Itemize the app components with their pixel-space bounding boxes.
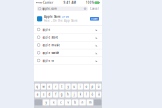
- staticText: e watch: [48, 51, 59, 55]
- button[interactable]: r: [53, 84, 58, 90]
- button[interactable]: VIEW: [90, 17, 99, 21]
- staticText: b: [74, 101, 76, 104]
- button[interactable]: x: [50, 99, 57, 105]
- staticText: s: [43, 93, 44, 96]
- button[interactable]: i: [78, 84, 83, 90]
- button[interactable]: y: [65, 84, 71, 90]
- button[interactable]: appl: [34, 57, 102, 65]
- button[interactable]: b: [72, 99, 78, 105]
- button[interactable]: j: [71, 91, 77, 97]
- staticText: q: [36, 85, 38, 88]
- staticText: Free – On the App Store: [44, 19, 78, 23]
- staticText: 100%: [86, 1, 95, 4]
- button[interactable]: ü: [96, 84, 101, 90]
- staticText: w: [42, 85, 44, 88]
- button[interactable]: v: [65, 99, 71, 105]
- staticText: appl: [42, 43, 48, 47]
- button[interactable]: Delete: [94, 99, 101, 105]
- staticText: t: [61, 85, 62, 88]
- button[interactable]: t: [59, 84, 65, 90]
- button[interactable]: k: [78, 91, 83, 97]
- button[interactable]: h: [65, 91, 71, 97]
- staticText: n: [82, 101, 84, 104]
- button[interactable]: appl: [34, 26, 102, 34]
- staticText: appl: [42, 28, 48, 31]
- button[interactable]: appl: [34, 49, 102, 57]
- staticText: e: [49, 85, 51, 88]
- button[interactable]: appl: [34, 34, 102, 41]
- staticText: ä: [98, 93, 99, 96]
- staticText: u: [73, 85, 75, 88]
- staticText: appl: [42, 59, 48, 62]
- staticText: k: [80, 93, 81, 96]
- button[interactable]: e: [47, 84, 52, 90]
- button[interactable]: y: [43, 99, 49, 105]
- staticText: VIEW: [91, 17, 98, 20]
- staticText: p: [92, 85, 94, 88]
- staticText: a: [37, 93, 38, 96]
- staticText: m: [89, 101, 91, 104]
- staticText: g: [61, 93, 63, 96]
- staticText: l: [86, 93, 87, 96]
- button[interactable]: Shift: [35, 99, 42, 105]
- staticText: OPEN: [62, 15, 69, 18]
- button[interactable]: ä: [96, 91, 101, 97]
- staticText: ö: [92, 93, 94, 96]
- button[interactable]: o: [84, 84, 89, 90]
- button[interactable]: u: [71, 84, 77, 90]
- staticText: c: [60, 101, 61, 104]
- button[interactable]: a: [35, 91, 40, 97]
- button[interactable]: s: [41, 91, 46, 97]
- staticText: r: [55, 85, 56, 88]
- button[interactable]: q: [35, 84, 40, 90]
- button[interactable]: w: [41, 84, 46, 90]
- staticText: apple.com: [42, 7, 56, 10]
- staticText: j: [74, 93, 75, 96]
- button[interactable]: g: [59, 91, 65, 97]
- staticText: appl: [42, 51, 48, 55]
- button[interactable]: p: [90, 84, 95, 90]
- staticText: o: [85, 85, 87, 88]
- button[interactable]: c: [57, 99, 64, 105]
- staticText: f: [55, 93, 56, 96]
- staticText: y: [46, 101, 47, 104]
- staticText: x: [53, 101, 54, 104]
- button[interactable]: Cancel: [90, 7, 99, 10]
- button[interactable]: l: [84, 91, 89, 97]
- staticText: e tv: [48, 59, 53, 62]
- button[interactable]: d: [47, 91, 52, 97]
- staticText: Apple Store: [44, 15, 61, 18]
- button[interactable]: n: [79, 99, 86, 105]
- staticText: d: [49, 93, 51, 96]
- staticText: e store: [48, 36, 58, 39]
- staticText: e: [48, 28, 50, 31]
- button[interactable]: m: [87, 99, 93, 105]
- staticText: Cancel: [90, 7, 99, 10]
- staticText: Carrier: [42, 1, 53, 4]
- staticText: i: [80, 85, 81, 88]
- button[interactable]: f: [53, 91, 58, 97]
- staticText: ü: [98, 85, 100, 88]
- button[interactable]: appl: [34, 41, 102, 49]
- staticText: h: [67, 93, 69, 96]
- staticText: appl: [42, 36, 48, 39]
- staticText: e music: [48, 43, 59, 47]
- button[interactable]: ö: [90, 91, 95, 97]
- staticText: 9:41 AM: [63, 1, 75, 4]
